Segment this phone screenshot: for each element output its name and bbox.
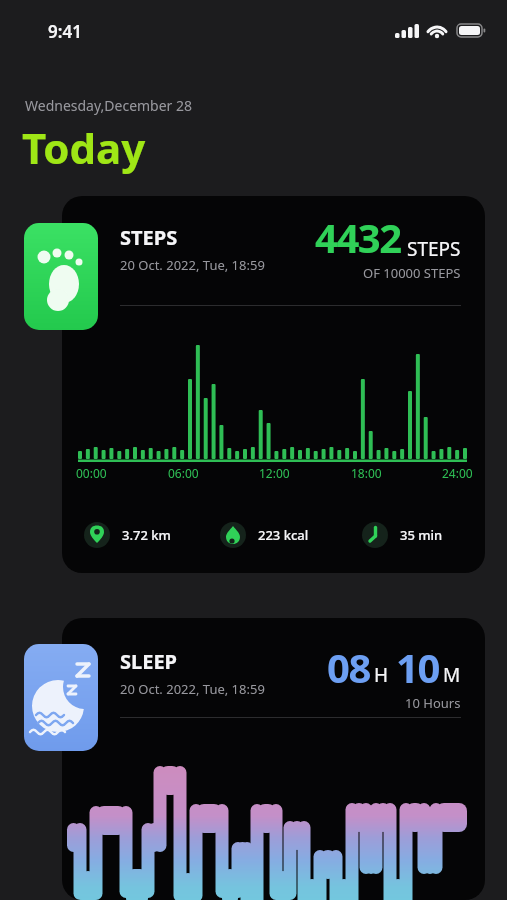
- staticText: 9:41: [48, 20, 82, 43]
- staticText: M: [443, 662, 461, 688]
- button[interactable]: [24, 644, 98, 751]
- staticText: 00:00: [76, 465, 107, 481]
- staticText: 20 Oct. 2022, Tue, 18:59: [120, 680, 265, 698]
- staticText: OF 10000 STEPS: [363, 264, 461, 282]
- staticText: 10: [396, 640, 439, 694]
- staticText: 10 Hours: [405, 694, 461, 712]
- button[interactable]: 35 min: [362, 522, 443, 548]
- staticText: Today: [22, 119, 146, 176]
- staticText: 4432: [315, 210, 401, 264]
- staticText: 20 Oct. 2022, Tue, 18:59: [120, 256, 265, 274]
- staticText: 223 kcal: [258, 526, 309, 544]
- button[interactable]: STEPS: [62, 196, 485, 573]
- staticText: 24:00: [442, 465, 473, 481]
- staticText: 3.72 km: [122, 526, 171, 544]
- staticText: 08: [327, 640, 370, 694]
- staticText: 06:00: [168, 465, 199, 481]
- button[interactable]: [24, 223, 98, 330]
- staticText: 12:00: [259, 465, 290, 481]
- staticText: SLEEP: [120, 648, 178, 675]
- button[interactable]: 3.72 km: [84, 522, 171, 548]
- staticText: Wednesday,December 28: [25, 96, 193, 115]
- button[interactable]: SLEEP: [62, 618, 485, 900]
- staticText: 35 min: [400, 526, 443, 544]
- button[interactable]: 223 kcal: [220, 522, 309, 548]
- staticText: H: [374, 662, 389, 688]
- staticText: 18:00: [351, 465, 382, 481]
- staticText: STEPS: [407, 236, 461, 262]
- staticText: STEPS: [120, 224, 178, 251]
